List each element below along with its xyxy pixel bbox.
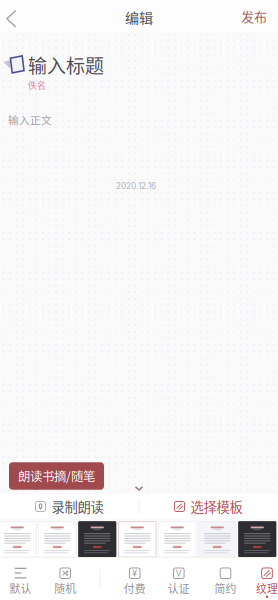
button[interactable]: ¥ <box>114 558 156 600</box>
staticText: 录制朗读 <box>51 497 103 516</box>
staticText: 默认 <box>9 580 31 596</box>
staticText: 编辑 <box>125 7 153 27</box>
staticText: 发布 <box>241 6 267 25</box>
button[interactable]: 简约 <box>204 558 246 600</box>
staticText: V <box>176 568 182 578</box>
button[interactable]: 录制朗读 <box>0 494 139 519</box>
button[interactable]: V <box>158 558 200 600</box>
staticText: 输入正文 <box>8 112 52 127</box>
button[interactable]: 选择模板 <box>139 494 278 519</box>
button[interactable]: Collapse <box>124 480 154 496</box>
staticText: 输入标题 <box>28 51 104 79</box>
button[interactable]: 默认 <box>0 558 41 600</box>
button[interactable]: Back <box>0 0 40 32</box>
staticText: 纹理 <box>256 580 278 596</box>
staticText: 认证 <box>168 580 190 596</box>
button[interactable]: 发布 <box>228 4 278 28</box>
button[interactable]: 纹理 <box>246 558 278 600</box>
button[interactable]: 随机 <box>44 558 86 600</box>
staticText: 付费 <box>124 580 146 596</box>
staticText: 朗读书摘/随笔 <box>18 467 95 485</box>
staticText: 2020.12.16 <box>116 181 156 191</box>
staticText: 简约 <box>214 580 236 596</box>
staticText: 佚名 <box>28 79 46 91</box>
staticText: ¥ <box>132 568 137 578</box>
staticText: 随机 <box>54 580 76 596</box>
staticText: 选择模板 <box>190 497 242 516</box>
